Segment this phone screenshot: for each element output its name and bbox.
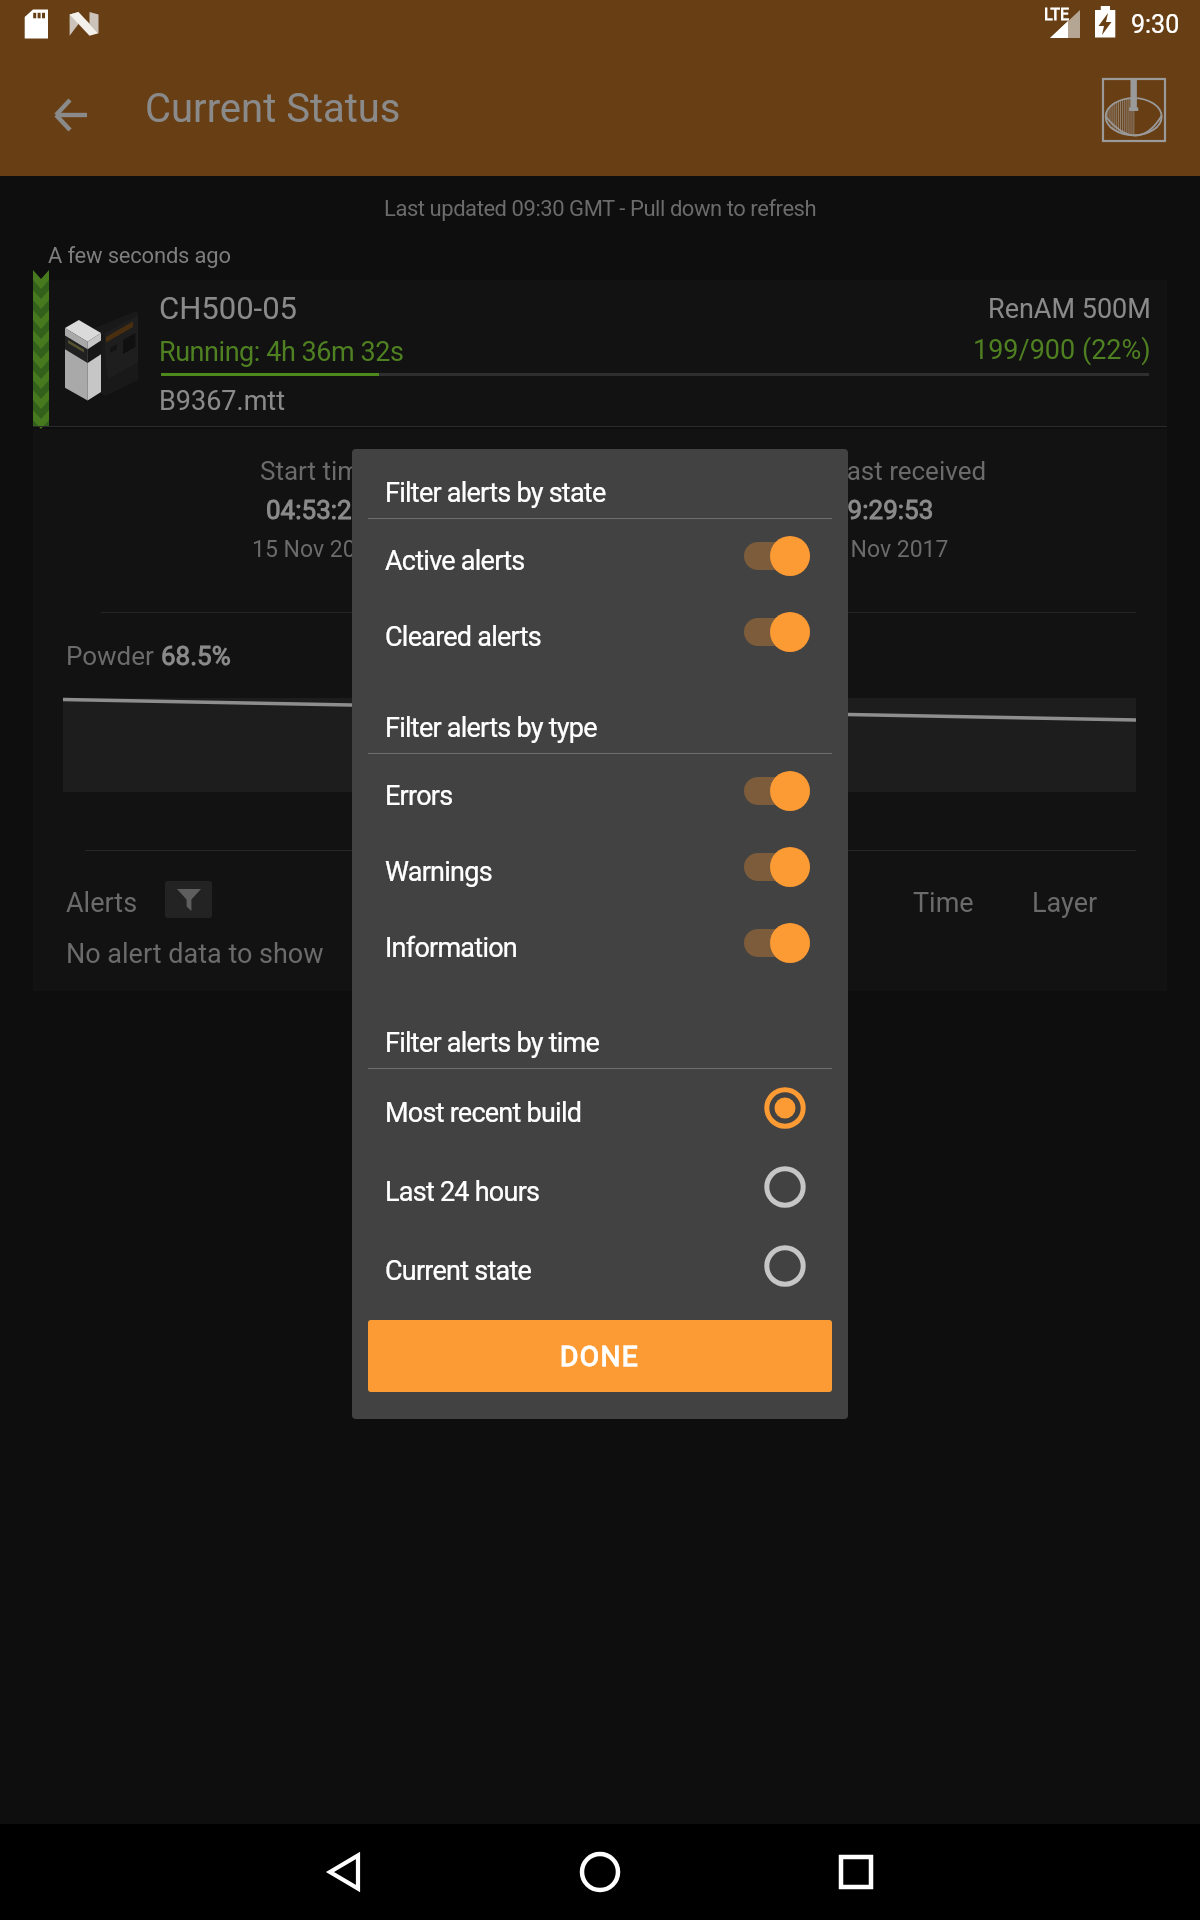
button[interactable]: Renishaw xyxy=(1102,78,1166,142)
staticText: 15 Nov 2017 xyxy=(252,536,382,563)
staticText: Cleared alerts xyxy=(385,621,541,653)
button[interactable]: Active alerts xyxy=(352,518,848,594)
staticText: 09:29:53 xyxy=(833,495,934,525)
button[interactable]: CH500-05 xyxy=(33,280,1167,427)
staticText: Current Status xyxy=(145,85,401,132)
button[interactable]: Back xyxy=(300,1824,388,1920)
button[interactable]: DONE xyxy=(368,1320,832,1392)
staticText: 199/900 (22%) xyxy=(973,334,1151,366)
staticText: Powder xyxy=(66,641,161,671)
staticText: Start time xyxy=(260,456,374,486)
staticText: Time xyxy=(913,887,974,919)
staticText: Filter alerts by time xyxy=(385,1027,600,1059)
button[interactable]: Current state xyxy=(352,1226,848,1305)
staticText: CH500-05 xyxy=(159,290,297,326)
staticText: Data last received xyxy=(780,456,987,486)
staticText: Last 24 hours xyxy=(385,1176,540,1208)
button[interactable]: Filter alerts xyxy=(165,881,212,918)
button[interactable]: Navigate up xyxy=(55,98,88,132)
staticText: 04:53:21 xyxy=(266,495,367,525)
staticText: Last updated 09:30 GMT - Pull down to re… xyxy=(384,196,817,222)
staticText: DONE xyxy=(560,1340,640,1373)
staticText: LTE xyxy=(1044,5,1070,24)
staticText: Layer xyxy=(1032,887,1098,919)
button[interactable]: Warnings xyxy=(352,829,848,905)
staticText: 9:30 xyxy=(1131,10,1180,39)
staticText: B9367.mtt xyxy=(159,385,285,417)
staticText: No alert data to show xyxy=(66,938,324,970)
staticText: Active alerts xyxy=(385,545,525,577)
button[interactable]: Information xyxy=(352,905,848,981)
staticText: Running: 4h 36m 32s xyxy=(159,336,404,368)
button[interactable]: Last 24 hours xyxy=(352,1147,848,1226)
staticText: RenAM 500M xyxy=(988,293,1151,325)
staticText: Alerts xyxy=(66,887,138,919)
staticText: Current state xyxy=(385,1255,532,1287)
staticText: Filter alerts by type xyxy=(385,712,597,744)
button[interactable]: Errors xyxy=(352,753,848,829)
staticText: Information xyxy=(385,932,518,964)
staticText: 68.5% xyxy=(161,641,231,671)
button[interactable]: Most recent build xyxy=(352,1068,848,1147)
staticText: Warnings xyxy=(385,856,492,888)
staticText: A few seconds ago xyxy=(48,243,231,269)
staticText: Errors xyxy=(385,780,453,812)
button[interactable]: Recent apps xyxy=(812,1824,900,1920)
button[interactable]: Home xyxy=(556,1824,644,1920)
staticText: Most recent build xyxy=(385,1097,582,1129)
staticText: Filter alerts by state xyxy=(385,477,606,509)
staticText: 15 Nov 2017 xyxy=(819,536,949,563)
button[interactable]: Cleared alerts xyxy=(352,594,848,670)
